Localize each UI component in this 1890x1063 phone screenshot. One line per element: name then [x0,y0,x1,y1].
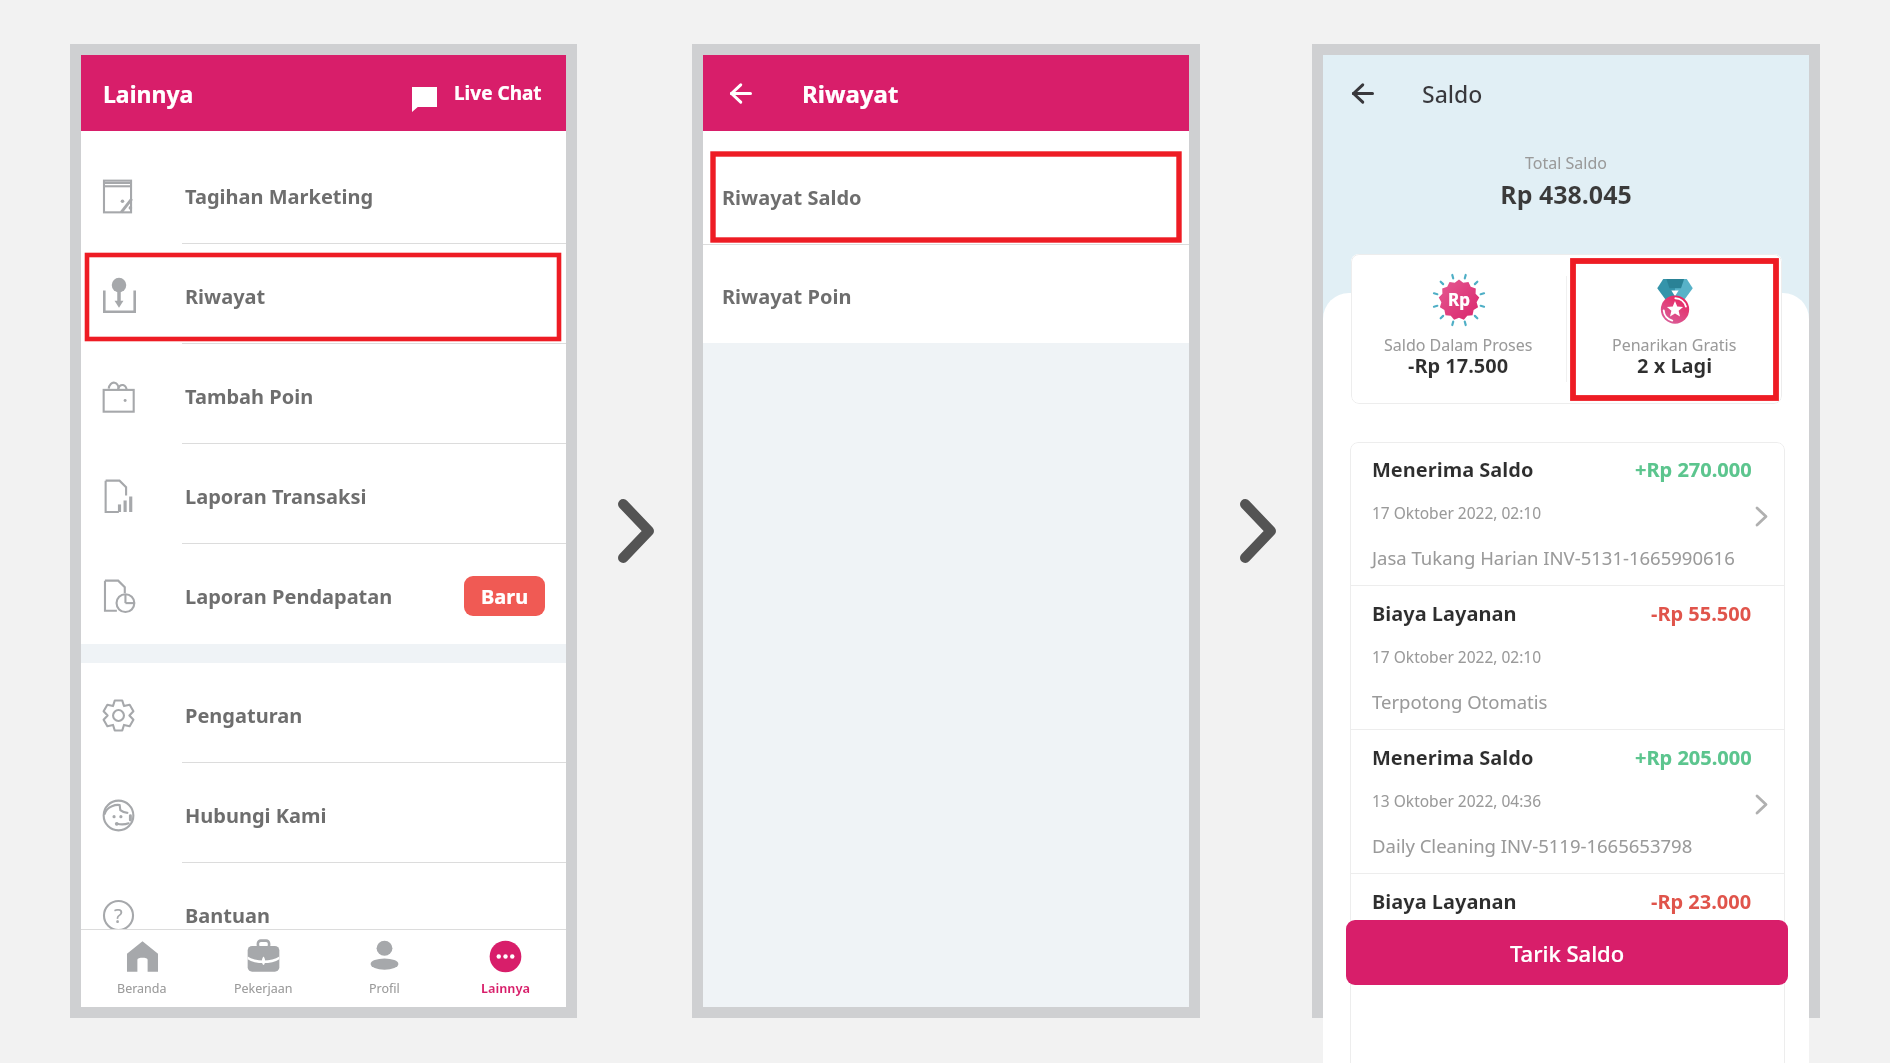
button[interactable]: Biaya Layanan [1350,586,1785,730]
staticText: Rp 438.045 [1323,177,1809,211]
button[interactable]: Riwayat [81,244,566,344]
button[interactable]: Hubungi Kami [81,763,566,863]
staticText: Lainnya [481,980,531,997]
staticText: Saldo [1422,78,1483,109]
staticText: Pekerjaan [234,980,293,997]
staticText: Riwayat [802,77,899,110]
button[interactable]: Riwayat Saldo [703,145,1189,245]
staticText: Tarik Saldo [1510,938,1625,968]
staticText: Biaya Layanan [1372,888,1517,915]
staticText: -Rp 23.000 [1651,888,1752,915]
staticText: 2 x Lagi [1637,352,1713,379]
button[interactable]: Pekerjaan [203,930,324,1007]
staticText: Riwayat Saldo [722,184,862,211]
staticText: Menerima Saldo [1372,456,1534,483]
staticText: Laporan Pendapatan [185,583,393,610]
button[interactable]: Riwayat Poin [703,245,1189,343]
staticText: Bantuan [185,902,270,929]
staticText: Total Saldo [1323,152,1809,174]
staticText: Pengaturan [185,702,303,729]
staticText: ? [114,902,123,929]
staticText: Menerima Saldo [1372,744,1534,771]
button[interactable]: Rp [1351,254,1566,404]
button[interactable]: Tarik Saldo [1346,920,1788,985]
button[interactable]: Biaya Layanan [1350,874,1785,1063]
staticText: Saldo Dalam Proses [1384,334,1533,356]
staticText: -Rp 17.500 [1408,352,1509,379]
staticText: Penarikan Gratis [1612,334,1737,356]
staticText: 13 Oktober 2022, 04:36 [1372,790,1542,811]
staticText: Tambah Poin [185,383,314,410]
button[interactable]: Back [719,71,763,115]
button[interactable]: Tambah Poin [81,344,566,444]
staticText: Live Chat [454,80,542,106]
button[interactable]: Lainnya [445,930,566,1007]
button[interactable]: Penarikan Gratis [1567,254,1782,404]
staticText: Jasa Tukang Harian INV-5131-1665990616 [1372,545,1735,570]
button[interactable]: Laporan Pendapatan [81,544,566,644]
button[interactable]: Laporan Transaksi [81,444,566,544]
staticText: 17 Oktober 2022, 02:10 [1372,502,1542,523]
staticText: 17 Oktober 2022, 02:10 [1372,934,1542,955]
staticText: Riwayat [185,283,266,310]
staticText: Tagihan Marketing [185,183,374,210]
button[interactable]: Tagihan Marketing [81,144,566,244]
button[interactable]: Beranda [81,930,203,1007]
staticText: +Rp 270.000 [1635,456,1752,483]
button[interactable]: Menerima Saldo [1350,730,1785,874]
button[interactable]: Menerima Saldo [1350,442,1785,586]
staticText: Biaya Layanan [1372,600,1517,627]
staticText: +Rp 205.000 [1635,744,1752,771]
staticText: Daily Cleaning INV-5119-1665653798 [1372,833,1693,858]
staticText: Rp [1448,288,1470,311]
button[interactable]: Back [1341,71,1385,115]
staticText: -Rp 55.500 [1651,600,1752,627]
staticText: Laporan Transaksi [185,483,367,510]
staticText: Terpotong Otomatis [1372,689,1548,714]
staticText: Baru [481,583,529,610]
staticText: Beranda [117,980,167,997]
staticText: 17 Oktober 2022, 02:10 [1372,646,1542,667]
button[interactable]: Pengaturan [81,663,566,763]
staticText: Riwayat Poin [722,283,852,310]
staticText: Hubungi Kami [185,802,327,829]
staticText: Lainnya [103,78,194,109]
button[interactable]: Live Chat [412,55,542,131]
staticText: Profil [369,980,400,997]
button[interactable]: ? [81,863,566,963]
button[interactable]: Profil [324,930,445,1007]
